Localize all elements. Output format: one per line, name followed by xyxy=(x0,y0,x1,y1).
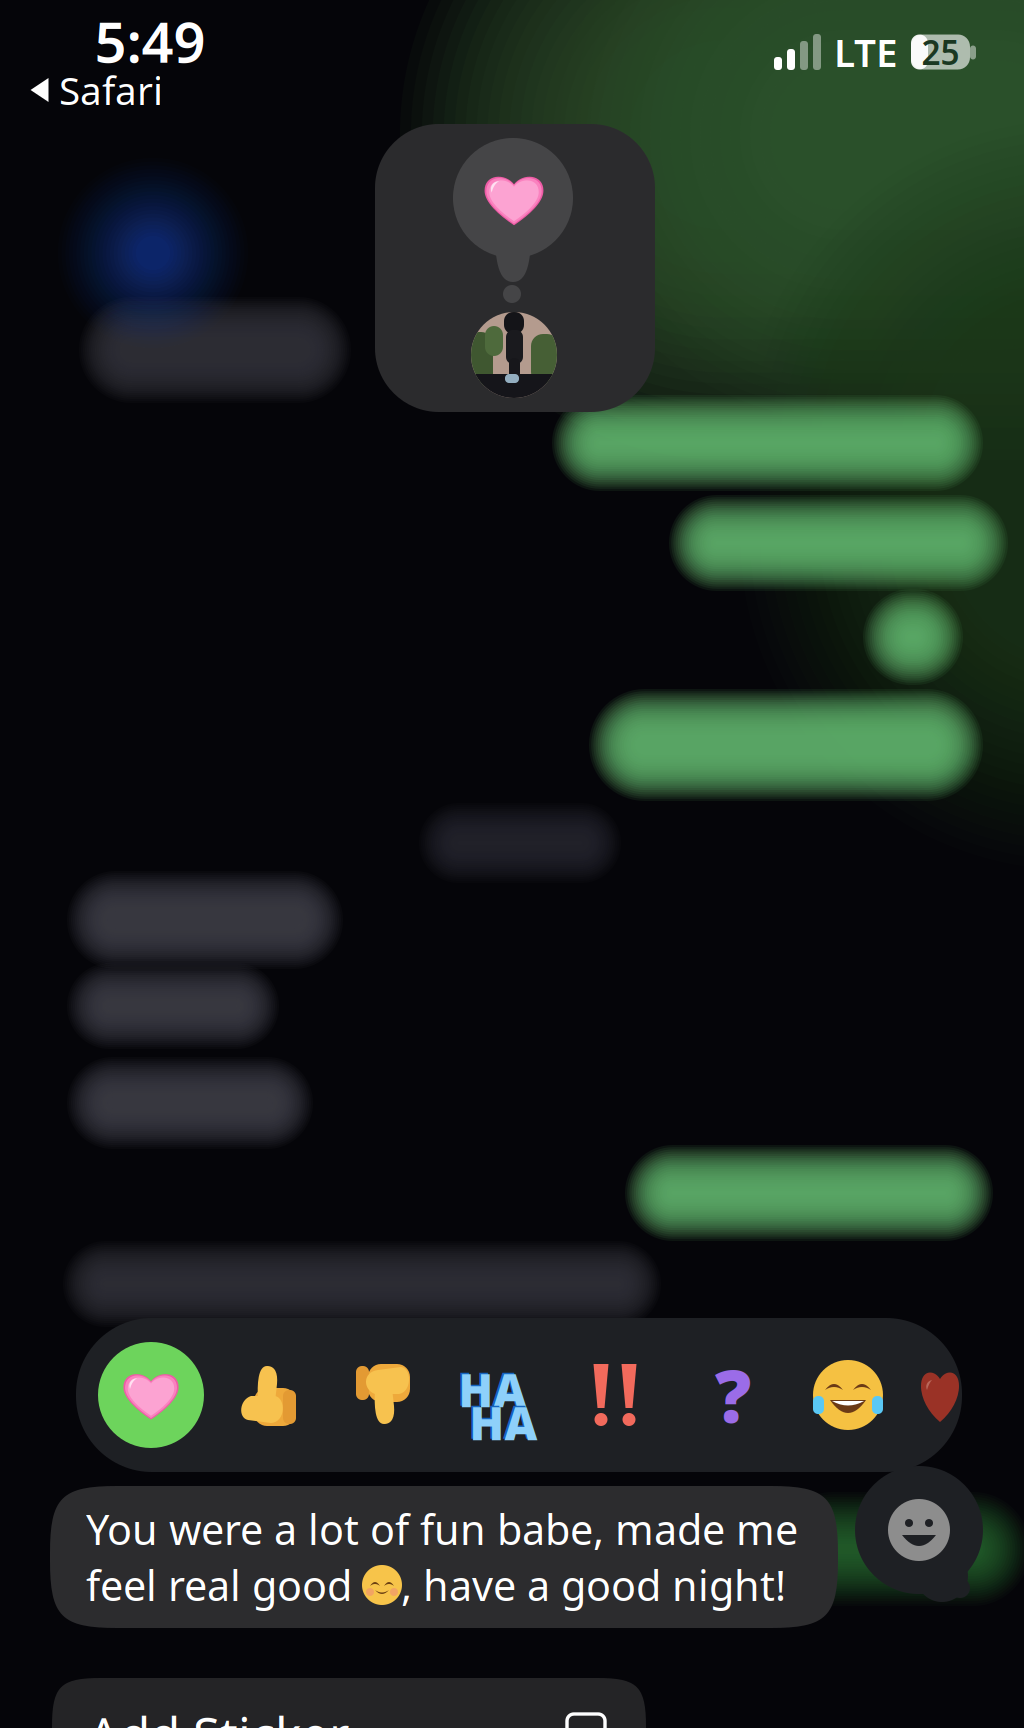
staticText: , have a good night! xyxy=(401,1558,786,1612)
button[interactable]: More reactions xyxy=(919,1366,961,1424)
button[interactable]: Haha reaction xyxy=(450,1345,550,1445)
staticText: 25 xyxy=(921,30,959,74)
staticText: HA xyxy=(468,1391,536,1451)
staticText: 5:49 xyxy=(94,4,205,78)
button[interactable]: Safari xyxy=(30,70,163,110)
button[interactable]: Heart reaction xyxy=(98,1342,204,1448)
button[interactable]: Thumbs up reaction xyxy=(218,1345,318,1445)
staticText: ? xyxy=(715,1347,751,1443)
staticText: HA xyxy=(469,1392,537,1453)
staticText: HA xyxy=(457,1358,525,1418)
staticText: HA xyxy=(458,1359,526,1420)
button[interactable]: Question mark reaction xyxy=(683,1345,783,1445)
staticText: You were a lot of fun babe, made me xyxy=(86,1502,798,1556)
staticText: feel real good xyxy=(86,1558,363,1612)
staticText: Safari xyxy=(59,64,163,116)
button[interactable]: Add Sticker xyxy=(52,1678,646,1728)
button[interactable]: Thumbs down reaction xyxy=(332,1345,432,1445)
button[interactable]: Exclamation reaction xyxy=(565,1345,665,1445)
button[interactable]: Laughing reaction xyxy=(798,1345,898,1445)
staticText: LTE xyxy=(834,26,898,78)
staticText: Add Sticker xyxy=(88,1701,349,1728)
